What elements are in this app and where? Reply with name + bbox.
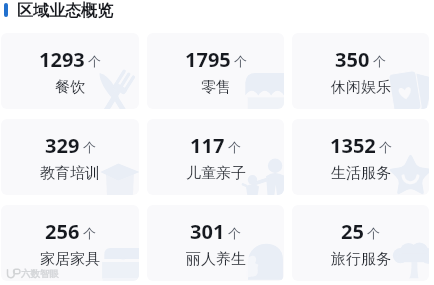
staticText: 儿童亲子 [186,164,246,183]
staticText: 25 [341,218,364,245]
staticText: 休闲娱乐 [331,78,391,97]
button[interactable]: 1352 [292,119,429,195]
button[interactable]: 329 [1,119,139,195]
staticText: 1293 [39,46,85,73]
button[interactable]: 256 [1,205,139,281]
staticText: 个 [83,225,96,241]
staticText: 零售 [201,78,231,97]
button[interactable]: 25 [292,205,429,281]
staticText: 丽人养生 [186,250,246,269]
staticText: 个 [367,225,380,241]
staticText: 329 [45,132,80,159]
staticText: 117 [190,132,225,159]
staticText: 301 [190,218,225,245]
staticText: 256 [45,218,80,245]
button[interactable]: 1293 [1,33,139,109]
button[interactable]: 350 [292,33,429,109]
staticText: 1352 [330,132,376,159]
button[interactable]: 117 [147,119,284,195]
staticText: 个 [373,53,386,69]
staticText: 1795 [185,46,231,73]
staticText: 家居家具 [40,250,100,269]
staticText: 六数智眼 [21,268,59,280]
button[interactable]: 1795 [147,33,284,109]
staticText: 350 [335,46,370,73]
button[interactable]: 301 [147,205,284,281]
staticText: 个 [83,139,96,155]
staticText: 生活服务 [331,164,391,183]
staticText: 旅行服务 [331,250,391,269]
staticText: 个 [88,53,101,69]
staticText: 教育培训 [40,164,100,183]
staticText: 餐饮 [55,78,85,97]
staticText: 个 [379,139,392,155]
staticText: 区域业态概览 [17,1,113,21]
staticText: 个 [234,53,247,69]
staticText: 个 [228,225,241,241]
staticText: 个 [228,139,241,155]
